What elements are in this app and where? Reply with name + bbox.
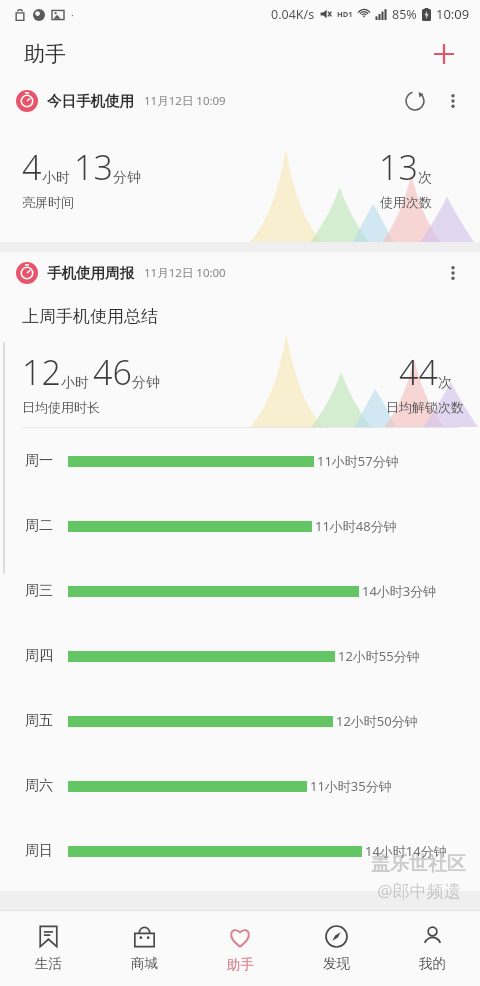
button[interactable]: 发现 bbox=[288, 911, 384, 986]
button[interactable]: 周五 bbox=[0, 688, 480, 753]
staticText: 上周手机使用总结 bbox=[22, 306, 158, 327]
staticText: 14小时14分钟 bbox=[365, 842, 447, 860]
staticText: 44 bbox=[399, 349, 438, 395]
staticText: 日均解锁次数 bbox=[386, 399, 464, 415]
staticText: 46 bbox=[93, 349, 132, 395]
staticText: 周一 bbox=[25, 452, 61, 470]
staticText: 11小时57分钟 bbox=[317, 452, 399, 470]
staticText: 周四 bbox=[25, 647, 61, 665]
staticText: 周六 bbox=[25, 777, 61, 795]
staticText: 12小时55分钟 bbox=[338, 647, 420, 665]
staticText: 使用次数 bbox=[380, 194, 432, 210]
staticText: 周三 bbox=[25, 582, 61, 600]
staticText: 10:09 bbox=[436, 5, 470, 23]
staticText: 次 bbox=[418, 169, 432, 187]
button[interactable]: More options bbox=[434, 82, 472, 120]
staticText: 小时 bbox=[61, 374, 89, 392]
button[interactable]: 周四 bbox=[0, 623, 480, 688]
staticText: 发现 bbox=[323, 955, 350, 972]
button[interactable]: 周日 bbox=[0, 818, 480, 883]
staticText: @郎中频遗 bbox=[377, 879, 461, 902]
staticText: 助手 bbox=[227, 956, 254, 973]
button[interactable]: 周一 bbox=[0, 428, 480, 493]
button[interactable]: 助手 bbox=[192, 911, 288, 986]
button[interactable]: Add bbox=[422, 32, 466, 76]
staticText: 11月12日 10:00 bbox=[144, 265, 226, 281]
staticText: 今日手机使用 bbox=[47, 92, 134, 110]
staticText: 4 bbox=[22, 144, 42, 190]
staticText: 分钟 bbox=[113, 169, 141, 187]
staticText: 0.04K/s bbox=[271, 6, 315, 23]
staticText: 分钟 bbox=[132, 374, 160, 392]
staticText: · bbox=[71, 7, 74, 22]
button[interactable]: 周六 bbox=[0, 753, 480, 818]
staticText: 85% bbox=[392, 6, 417, 23]
staticText: 我的 bbox=[419, 955, 446, 972]
staticText: HD1 bbox=[337, 9, 353, 19]
staticText: 商城 bbox=[131, 955, 158, 972]
staticText: 11小时35分钟 bbox=[310, 777, 392, 795]
button[interactable]: More options bbox=[434, 254, 472, 292]
staticText: 周五 bbox=[25, 712, 61, 730]
button[interactable]: 今日手机使用 bbox=[0, 80, 480, 242]
button[interactable]: 我的 bbox=[384, 911, 480, 986]
button[interactable]: 周三 bbox=[0, 558, 480, 623]
staticText: 小时 bbox=[42, 169, 70, 187]
staticText: 12 bbox=[22, 349, 61, 395]
staticText: 周二 bbox=[25, 517, 61, 535]
staticText: 次 bbox=[438, 374, 452, 392]
staticText: 13 bbox=[74, 144, 113, 190]
staticText: 12小时50分钟 bbox=[336, 712, 418, 730]
staticText: 日均使用时长 bbox=[22, 399, 100, 415]
staticText: 盖乐世社区 bbox=[371, 852, 466, 876]
button[interactable]: 商城 bbox=[96, 911, 192, 986]
staticText: 14小时3分钟 bbox=[362, 582, 437, 600]
staticText: 亮屏时间 bbox=[22, 194, 74, 210]
button[interactable]: 生活 bbox=[0, 911, 96, 986]
staticText: 周日 bbox=[25, 842, 61, 860]
staticText: 11月12日 10:09 bbox=[144, 93, 226, 109]
button[interactable]: 周二 bbox=[0, 493, 480, 558]
staticText: 11小时48分钟 bbox=[315, 517, 397, 535]
staticText: 助手 bbox=[24, 41, 66, 67]
staticText: 生活 bbox=[35, 955, 62, 972]
staticText: 13 bbox=[379, 144, 418, 190]
staticText: 手机使用周报 bbox=[47, 264, 134, 282]
button[interactable]: Refresh bbox=[396, 82, 434, 120]
